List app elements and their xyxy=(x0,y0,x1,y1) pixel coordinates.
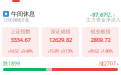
button[interactable]: 上证指数 xyxy=(2,27,39,57)
staticText: +0.13% xyxy=(60,48,73,54)
staticText: +49.62 xyxy=(87,48,98,54)
staticText: 涨2707 xyxy=(99,60,116,67)
staticText: +0.44% xyxy=(20,48,33,54)
button[interactable]: 午间休息 xyxy=(3,10,35,18)
button[interactable]: 涨2707 xyxy=(99,60,119,67)
staticText: +14.52 xyxy=(7,48,18,54)
staticText: 深证成指 xyxy=(50,28,70,35)
staticText: +15.89 xyxy=(47,48,58,54)
staticText: 主力资金净流入 xyxy=(86,17,121,23)
staticText: 2809.72 xyxy=(90,36,110,44)
staticText: 创业板指 xyxy=(90,28,110,35)
staticText: 3334.67 xyxy=(10,36,30,44)
staticText: -97.67亿 xyxy=(90,11,112,18)
staticText: 跌1899 xyxy=(3,60,20,67)
button[interactable]: 创业板指 xyxy=(82,27,119,57)
staticText: › xyxy=(117,60,119,67)
button[interactable]: 跌1899 xyxy=(3,60,20,67)
staticText: 上证指数 xyxy=(10,28,30,35)
staticText: +1.80% xyxy=(100,48,113,54)
staticText: 午间休息 xyxy=(11,10,35,18)
button[interactable]: 深证成指 xyxy=(42,27,79,57)
staticText: › xyxy=(113,10,115,19)
staticText: 12629.82 xyxy=(49,36,72,44)
staticText: 13:00 继续开盘 xyxy=(3,17,29,23)
button[interactable]: -97.67亿 xyxy=(90,10,115,19)
